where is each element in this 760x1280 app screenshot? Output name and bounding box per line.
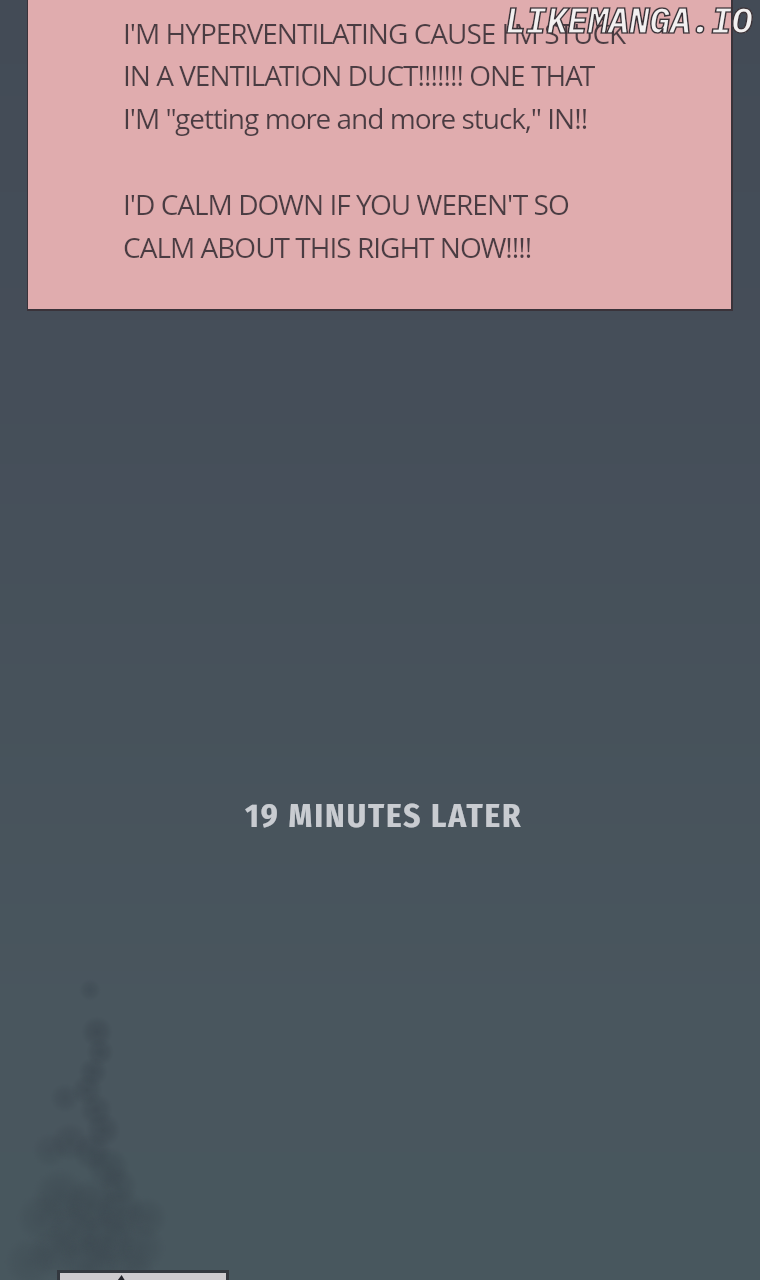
- other: LikeManga watermark: [505, 0, 753, 43]
- button[interactable]: I'M HYPERVENTILATING CAUSE I'M STUCK IN …: [0, 0, 760, 1280]
- button[interactable]: I'M HYPERVENTILATING CAUSE I'M STUCK IN …: [27, 0, 733, 311]
- staticText: I'M HYPERVENTILATING CAUSE I'M STUCK IN …: [123, 14, 626, 267]
- staticText: LIKEMANGA.IO: [505, 0, 753, 43]
- staticText: LIKEMANGA.IO: [505, 0, 753, 43]
- staticText: 19 MINUTES LATER: [245, 796, 523, 836]
- button[interactable]: [57, 1270, 229, 1280]
